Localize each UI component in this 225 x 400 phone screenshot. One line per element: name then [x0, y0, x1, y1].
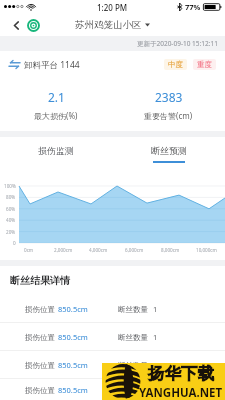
button[interactable]: 中度 [164, 59, 187, 70]
staticText: 60% [6, 206, 16, 212]
staticText: 断丝数量 [118, 305, 148, 314]
staticText: 2,000cm [54, 247, 73, 253]
staticText: 1:20 PM [97, 2, 128, 13]
staticText: 6,000cm [125, 247, 144, 253]
staticText: 损伤位置 [25, 361, 55, 370]
staticText: 850.5cm [58, 385, 88, 395]
button[interactable]: Back [7, 16, 25, 34]
staticText: YANGHUA.NET [139, 385, 223, 400]
staticText: 损伤位置 [25, 305, 55, 314]
staticText: 重度 [197, 60, 212, 69]
staticText: 20% [6, 229, 16, 235]
staticText: 最大损伤(%) [34, 110, 78, 121]
staticText: 1 [153, 304, 158, 314]
staticText: 0 [13, 240, 16, 246]
button[interactable]: 损伤位置 [0, 295, 225, 323]
button[interactable]: 苏州鸡笼山小区 [75, 19, 150, 31]
button[interactable]: 重度 [193, 59, 216, 70]
staticText: 1 [153, 385, 158, 395]
staticText: 2.1 [48, 89, 65, 105]
button[interactable]: 断丝预测 [112, 137, 225, 168]
staticText: 苏州鸡笼山小区 [75, 19, 142, 31]
staticText: 断丝数量 [118, 333, 148, 342]
staticText: 中度 [168, 60, 183, 69]
button[interactable]: 损伤位置 [0, 351, 225, 379]
staticText: 断丝预测 [151, 145, 187, 156]
staticText: 损伤位置 [25, 333, 55, 342]
staticText: 卸料平台 1144 [24, 59, 80, 71]
staticText: 850.5cm [58, 304, 88, 314]
staticText: 8,000cm [161, 247, 180, 253]
button[interactable]: 损伤位置 [0, 323, 225, 351]
staticText: 1 [153, 360, 158, 370]
staticText: 850.5cm [58, 360, 88, 370]
staticText: 80% [6, 194, 16, 200]
staticText: 断丝数量 [118, 361, 148, 370]
staticText: 损伤位置 [25, 386, 55, 395]
staticText: 100% [4, 183, 16, 189]
staticText: 0cm [24, 247, 34, 253]
staticText: 重要告警(cm) [144, 110, 193, 121]
staticText: 40% [6, 217, 16, 223]
staticText: 2383 [155, 89, 183, 105]
button[interactable]: Locate [25, 17, 41, 33]
staticText: 10,000cm [196, 247, 217, 253]
button[interactable]: 损伤位置 [0, 379, 225, 400]
staticText: 扬华下载 [148, 363, 214, 384]
staticText: 损伤监测 [38, 145, 74, 156]
button[interactable]: 损伤监测 [0, 137, 112, 168]
staticText: 断丝结果详情 [10, 274, 70, 287]
staticText: 更新于2020-09-10 15:12:11 [137, 39, 218, 48]
staticText: 断丝数量 [118, 386, 148, 395]
staticText: 850.5cm [58, 332, 88, 342]
staticText: 77% [185, 2, 201, 12]
staticText: 1 [153, 332, 158, 342]
staticText: 4,000cm [89, 247, 108, 253]
